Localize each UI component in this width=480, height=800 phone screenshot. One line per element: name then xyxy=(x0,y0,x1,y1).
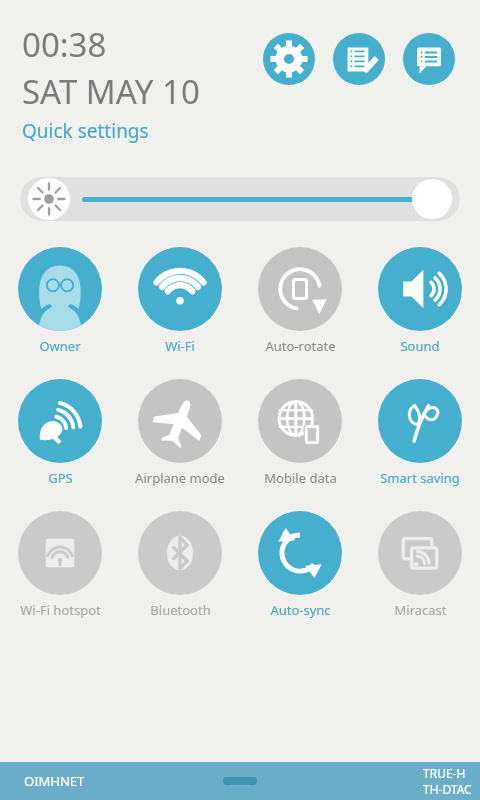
staticText: Auto-rotate xyxy=(265,337,336,355)
staticText: OIMHNET xyxy=(24,772,85,790)
button[interactable]: Smart saving xyxy=(360,379,480,487)
button[interactable]: Airplane mode xyxy=(120,379,240,487)
staticText: Mobile data xyxy=(264,469,337,487)
button[interactable]: Auto-rotate xyxy=(240,247,360,355)
staticText: Airplane mode xyxy=(135,469,225,487)
staticText: Wi-Fi xyxy=(165,337,195,355)
button[interactable]: Mobile data xyxy=(240,379,360,487)
button[interactable]: Wi-Fi hotspot xyxy=(0,511,120,619)
button[interactable]: Auto-sync xyxy=(240,511,360,619)
button[interactable]: Miracast xyxy=(360,511,480,619)
staticText: Owner xyxy=(39,337,81,355)
staticText: SAT MAY 10 xyxy=(22,69,200,114)
staticText: Auto-sync xyxy=(270,601,331,619)
button[interactable]: Brightness xyxy=(20,177,460,221)
staticText: Wi-Fi hotspot xyxy=(20,601,101,619)
button[interactable]: Wi-Fi xyxy=(120,247,240,355)
staticText: GPS xyxy=(48,469,73,487)
button[interactable]: GPS xyxy=(0,379,120,487)
button[interactable]: Owner xyxy=(0,247,120,355)
staticText: Smart saving xyxy=(380,469,460,487)
button[interactable]: Sound xyxy=(360,247,480,355)
staticText: Sound xyxy=(400,337,440,355)
button[interactable]: Notifications xyxy=(403,33,455,85)
button[interactable]: Edit notes xyxy=(333,33,385,85)
staticText: TRUE-H xyxy=(423,765,466,781)
staticText: Quick settings xyxy=(22,118,149,144)
staticText: Miracast xyxy=(394,601,447,619)
staticText: 00:38 xyxy=(22,22,107,67)
staticText: Bluetooth xyxy=(150,601,211,619)
button[interactable]: Settings xyxy=(263,33,315,85)
button[interactable]: Bluetooth xyxy=(120,511,240,619)
staticText: TH-DTAC xyxy=(423,781,472,797)
